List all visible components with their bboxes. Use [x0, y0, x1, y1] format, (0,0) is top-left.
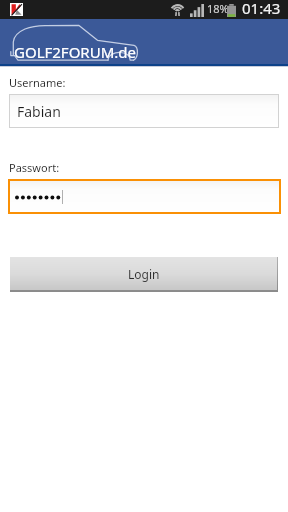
staticText: 01:43	[242, 0, 281, 17]
staticText: Login	[128, 266, 160, 282]
staticText: GOLF2FORUM.de	[14, 42, 136, 62]
button[interactable]: GOLF2FORUM.de	[0, 19, 288, 66]
button[interactable]: Fabian	[9, 94, 279, 128]
staticText: Username:	[9, 75, 66, 90]
button[interactable]	[8, 179, 281, 214]
button[interactable]: Login	[10, 257, 277, 290]
staticText: Fabian	[17, 102, 61, 121]
staticText: Passwort:	[9, 160, 60, 175]
staticText: 18%	[207, 1, 229, 16]
